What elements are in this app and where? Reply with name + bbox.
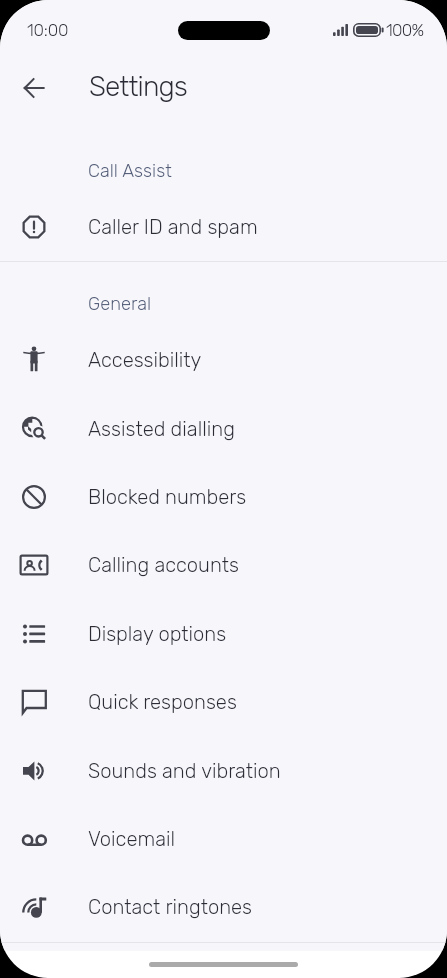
button[interactable]: Contact ringtones bbox=[0, 873, 447, 941]
staticText: Calling accounts bbox=[88, 553, 239, 577]
staticText: Accessibility bbox=[88, 348, 202, 372]
staticText: Contact ringtones bbox=[88, 895, 253, 919]
staticText: 10:00 bbox=[27, 20, 69, 40]
button[interactable]: Accessibility bbox=[0, 326, 447, 394]
staticText: Assisted dialling bbox=[88, 417, 235, 441]
button[interactable]: Display options bbox=[0, 600, 447, 668]
staticText: Blocked numbers bbox=[88, 485, 247, 509]
staticText: General bbox=[88, 293, 152, 315]
staticText: Display options bbox=[88, 622, 227, 646]
staticText: Quick responses bbox=[88, 690, 237, 714]
button[interactable]: Quick responses bbox=[0, 668, 447, 736]
button[interactable]: Back bbox=[10, 64, 58, 112]
staticText: Call Assist bbox=[88, 160, 172, 182]
button[interactable]: Calling accounts bbox=[0, 531, 447, 599]
staticText: Voicemail bbox=[88, 827, 176, 851]
button[interactable]: Caller ID and spam bbox=[0, 193, 447, 261]
staticText: Settings bbox=[89, 70, 187, 103]
staticText: Caller ID and spam bbox=[88, 215, 258, 239]
button[interactable]: Assisted dialling bbox=[0, 395, 447, 463]
staticText: 100% bbox=[386, 20, 424, 40]
button[interactable]: Voicemail bbox=[0, 805, 447, 873]
button[interactable]: Blocked numbers bbox=[0, 463, 447, 531]
button[interactable]: Sounds and vibration bbox=[0, 737, 447, 805]
staticText: Sounds and vibration bbox=[88, 759, 281, 783]
